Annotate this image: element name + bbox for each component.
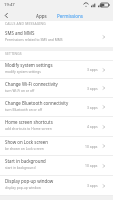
- button[interactable]: Modify system settings: [0, 61, 113, 79]
- staticText: 3 apps: [87, 86, 98, 91]
- staticText: 3 apps: [87, 183, 98, 188]
- staticText: Home screen shortcuts: [5, 119, 53, 125]
- button[interactable]: Display pop-up window: [0, 176, 113, 196]
- button[interactable]: SMS and MMS: [0, 27, 113, 47]
- staticText: CALLS AND MESSAGING: [5, 21, 46, 25]
- button[interactable]: Home screen shortcuts: [0, 117, 113, 137]
- staticText: Change Wi-Fi connectivity: [5, 81, 58, 87]
- staticText: Permissions: [57, 13, 84, 19]
- staticText: modify system settings: [5, 69, 41, 73]
- staticText: Apps: [36, 13, 47, 19]
- button[interactable]: Change Wi-Fi connectivity: [0, 79, 113, 98]
- staticText: 4 apps: [87, 124, 98, 129]
- staticText: turn Wi-Fi on or off: [5, 88, 35, 92]
- staticText: Start in background: [5, 158, 46, 164]
- staticText: 3 apps: [87, 67, 98, 72]
- button[interactable]: Back: [1, 10, 12, 21]
- staticText: turn Bluetooth on or off: [5, 107, 43, 111]
- button[interactable]: Apps: [35, 11, 48, 21]
- button[interactable]: Show on Lock screen: [0, 137, 113, 156]
- staticText: 3 apps: [87, 105, 98, 110]
- staticText: Change Bluetooth connectivity: [5, 100, 69, 106]
- staticText: be shown on Lock screen: [5, 146, 44, 150]
- button[interactable]: Change Bluetooth connectivity: [0, 98, 113, 117]
- staticText: start in background: [5, 165, 36, 169]
- staticText: Display pop-up window: [5, 178, 54, 184]
- staticText: 10 apps: [85, 163, 98, 168]
- button[interactable]: Permissions: [56, 11, 85, 21]
- staticText: Modify system settings: [5, 62, 53, 68]
- staticText: display pop-up window: [5, 185, 41, 189]
- staticText: 19:47: [4, 2, 15, 8]
- staticText: 10 apps: [85, 144, 98, 149]
- button[interactable]: Start in background: [0, 156, 113, 176]
- staticText: add shortcuts to Home screen: [5, 126, 52, 130]
- staticText: Show on Lock screen: [5, 139, 48, 145]
- staticText: SETTINGS: [5, 51, 22, 55]
- staticText: SMS and MMS: [5, 30, 35, 36]
- staticText: Permissions related to SMS and MMS: [5, 37, 63, 41]
